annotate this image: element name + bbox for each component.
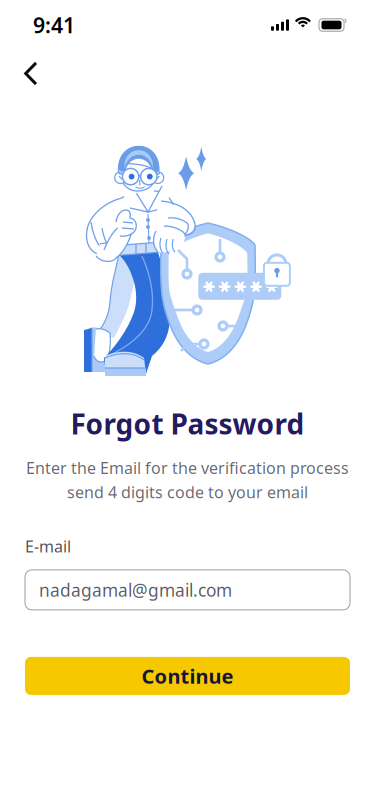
button[interactable]: Continue: [25, 657, 350, 695]
staticText: 9:41: [33, 11, 75, 39]
staticText: Forgot Password: [70, 405, 304, 442]
button[interactable]: Back: [25, 55, 69, 99]
staticText: Continue: [141, 663, 233, 689]
staticText: E-mail: [25, 536, 71, 557]
staticText: send 4 digits code to your email: [67, 481, 308, 503]
staticText: Enter the Email for the verification pro…: [26, 457, 349, 478]
staticText: nadagamal@gmail.com: [39, 578, 232, 601]
